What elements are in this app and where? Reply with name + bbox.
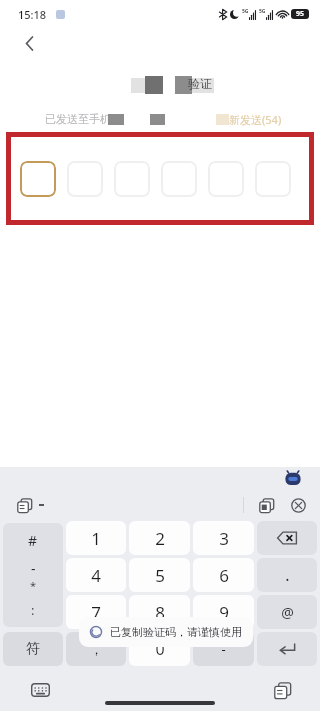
staticText: # — [28, 531, 38, 550]
staticText: 5G — [242, 8, 249, 15]
button[interactable]: 2 — [129, 521, 190, 555]
button[interactable]: Copy — [270, 678, 294, 702]
staticText: 新发送(54) — [229, 112, 282, 127]
button[interactable]: Enter — [257, 632, 317, 666]
button[interactable]: 0 — [129, 632, 190, 666]
staticText: 15:18 — [18, 7, 47, 22]
staticText: 0 — [155, 638, 165, 660]
button[interactable] — [208, 161, 244, 197]
staticText: * — [30, 578, 37, 593]
button[interactable]: Switch input — [256, 495, 276, 515]
staticText: 1 — [91, 527, 101, 550]
button[interactable] — [255, 161, 291, 197]
staticText: 验证 — [188, 76, 212, 91]
button[interactable]: Clipboard — [14, 495, 34, 515]
staticText: 4 — [91, 564, 101, 587]
staticText: 3 — [219, 527, 229, 550]
button[interactable]: 5 — [129, 558, 190, 592]
button[interactable]: - — [193, 632, 254, 666]
button[interactable] — [161, 161, 197, 197]
button[interactable]: 3 — [193, 521, 254, 555]
button[interactable]: 4 — [66, 558, 126, 592]
button[interactable]: # — [3, 523, 63, 627]
button[interactable] — [20, 161, 56, 197]
button[interactable]: 1 — [66, 521, 126, 555]
button[interactable]: 新发送(54) — [216, 112, 282, 127]
staticText: - — [221, 640, 226, 658]
button[interactable]: 6 — [193, 558, 254, 592]
staticText: 9 — [219, 601, 229, 624]
button[interactable]: 符 — [3, 632, 63, 666]
staticText: 5 — [155, 564, 165, 587]
button[interactable]: @ — [257, 595, 317, 629]
button[interactable]: 8 — [129, 595, 190, 629]
staticText: 已发送至手机 — [45, 112, 111, 126]
staticText: 5G — [259, 8, 266, 15]
staticText: 6 — [219, 564, 229, 587]
button[interactable] — [67, 161, 103, 197]
button[interactable]: Back — [14, 28, 44, 58]
staticText: - — [31, 559, 36, 578]
staticText: 已复制验证码，请谨慎使用 — [110, 625, 242, 639]
button[interactable]: Assistant — [284, 471, 302, 486]
button[interactable]: Close keyboard — [288, 495, 308, 515]
staticText: 7 — [91, 601, 101, 624]
staticText: : — [31, 601, 35, 619]
button[interactable]: . — [257, 558, 317, 592]
button[interactable]: ， — [66, 632, 126, 666]
button[interactable]: 7 — [66, 595, 126, 629]
staticText: . — [285, 564, 290, 586]
button[interactable] — [114, 161, 150, 197]
button[interactable]: Keyboard layout — [28, 678, 52, 702]
button[interactable]: Delete — [257, 521, 317, 555]
staticText: ， — [90, 641, 103, 657]
staticText: 2 — [155, 527, 165, 550]
staticText: @ — [281, 603, 294, 622]
staticText: 符 — [26, 640, 40, 658]
staticText: 8 — [155, 601, 165, 624]
staticText: 95 — [296, 9, 305, 19]
button[interactable]: 9 — [193, 595, 254, 629]
